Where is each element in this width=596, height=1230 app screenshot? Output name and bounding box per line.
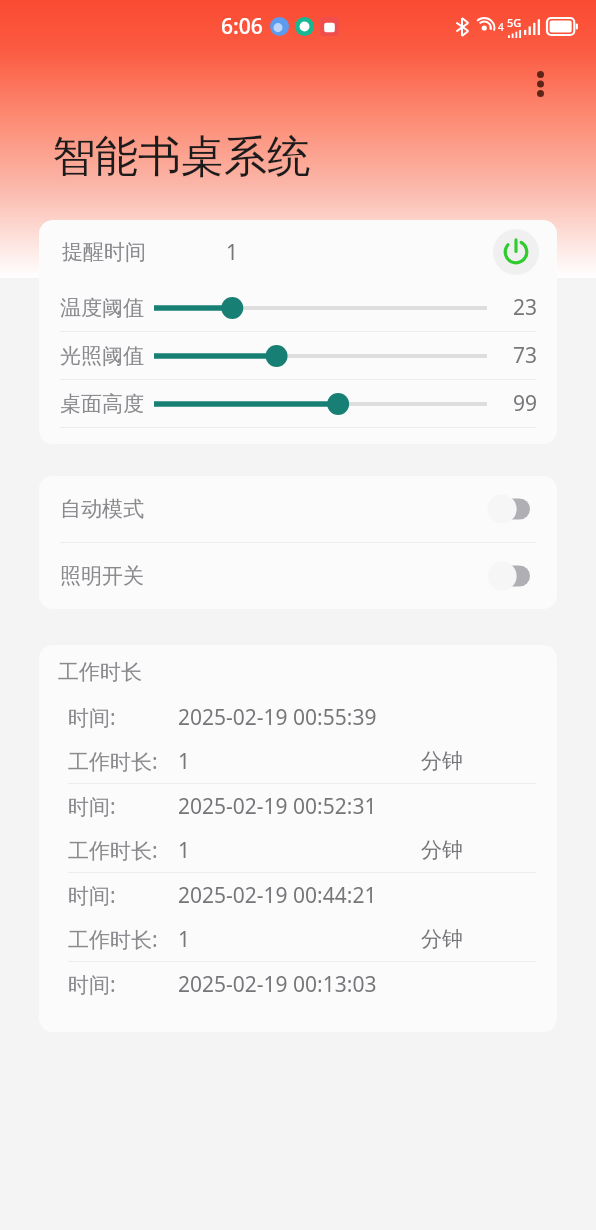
- staticText: 2025-02-19 00:13:03: [178, 970, 377, 999]
- staticText: 桌面高度: [60, 391, 144, 417]
- button[interactable]: 工作时长:: [39, 917, 557, 961]
- button[interactable]: 桌面高度: [39, 380, 557, 427]
- button[interactable]: 时间:: [39, 784, 557, 828]
- button[interactable]: 温度阈值: [39, 284, 557, 331]
- staticText: 时间:: [68, 792, 116, 821]
- button[interactable]: 照明开关: [39, 543, 557, 609]
- staticText: 时间:: [68, 970, 116, 999]
- staticText: 照明开关: [60, 563, 144, 589]
- button[interactable]: 时间:: [39, 873, 557, 917]
- staticText: 1: [178, 747, 191, 776]
- button[interactable]: 提醒时间: [39, 220, 557, 284]
- staticText: 分钟: [421, 926, 463, 952]
- button[interactable]: 光照阈值: [39, 332, 557, 379]
- button[interactable]: 时间:: [39, 695, 557, 739]
- staticText: 时间:: [68, 881, 116, 910]
- staticText: 工作时长:: [68, 836, 158, 865]
- staticText: 2025-02-19 00:52:31: [178, 792, 377, 821]
- staticText: 1: [178, 925, 191, 954]
- button[interactable]: 电源开关 Power: [493, 229, 539, 275]
- staticText: 提醒时间: [62, 239, 146, 265]
- staticText: 智能书桌系统: [52, 130, 310, 184]
- staticText: 2025-02-19 00:44:21: [178, 881, 377, 910]
- staticText: 1: [226, 238, 239, 267]
- staticText: 分钟: [421, 748, 463, 774]
- button[interactable]: 更多选项 More options: [523, 67, 557, 101]
- staticText: 工作时长:: [68, 747, 158, 776]
- staticText: 1: [178, 836, 191, 865]
- button[interactable]: 工作时长:: [39, 739, 557, 783]
- staticText: 时间:: [68, 703, 116, 732]
- staticText: 分钟: [421, 837, 463, 863]
- staticText: 4: [498, 20, 504, 34]
- staticText: 23: [503, 293, 537, 322]
- staticText: 2025-02-19 00:55:39: [178, 703, 377, 732]
- staticText: 自动模式: [60, 496, 144, 522]
- staticText: 温度阈值: [60, 295, 144, 321]
- staticText: 5G: [507, 15, 522, 30]
- staticText: 工作时长:: [68, 925, 158, 954]
- staticText: 6:06: [221, 12, 263, 41]
- button[interactable]: 时间:: [39, 962, 557, 1006]
- button[interactable]: 工作时长:: [39, 828, 557, 872]
- staticText: 99: [503, 389, 537, 418]
- staticText: 73: [503, 341, 537, 370]
- staticText: 工作时长: [58, 659, 142, 685]
- staticText: 光照阈值: [60, 343, 144, 369]
- button[interactable]: 自动模式: [39, 476, 557, 542]
